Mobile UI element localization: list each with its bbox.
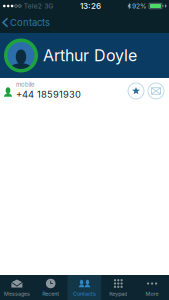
staticText: Keypad: [109, 290, 127, 297]
button[interactable]: More: [135, 275, 169, 300]
button[interactable]: Send message: [146, 81, 166, 101]
button[interactable]: Contacts: [0, 12, 56, 33]
staticText: mobile: [16, 81, 34, 88]
button[interactable]: Add to favourites: [126, 81, 146, 101]
button[interactable]: Recent: [34, 275, 68, 300]
staticText: Arthur Doyle: [43, 46, 137, 65]
staticText: Contacts: [73, 290, 96, 297]
staticText: Contacts: [10, 17, 50, 28]
staticText: Messages: [4, 290, 30, 297]
staticText: Tele2: [24, 2, 42, 10]
button[interactable]: Keypad: [101, 275, 135, 300]
button[interactable]: Messages: [0, 275, 34, 300]
button[interactable]: Contacts: [68, 275, 101, 300]
staticText: 13:26: [80, 1, 101, 11]
staticText: Recent: [42, 290, 59, 297]
staticText: More: [146, 290, 159, 297]
staticText: +44 18591930: [16, 89, 81, 100]
staticText: 3G: [44, 2, 53, 10]
staticText: 92%: [132, 2, 147, 10]
